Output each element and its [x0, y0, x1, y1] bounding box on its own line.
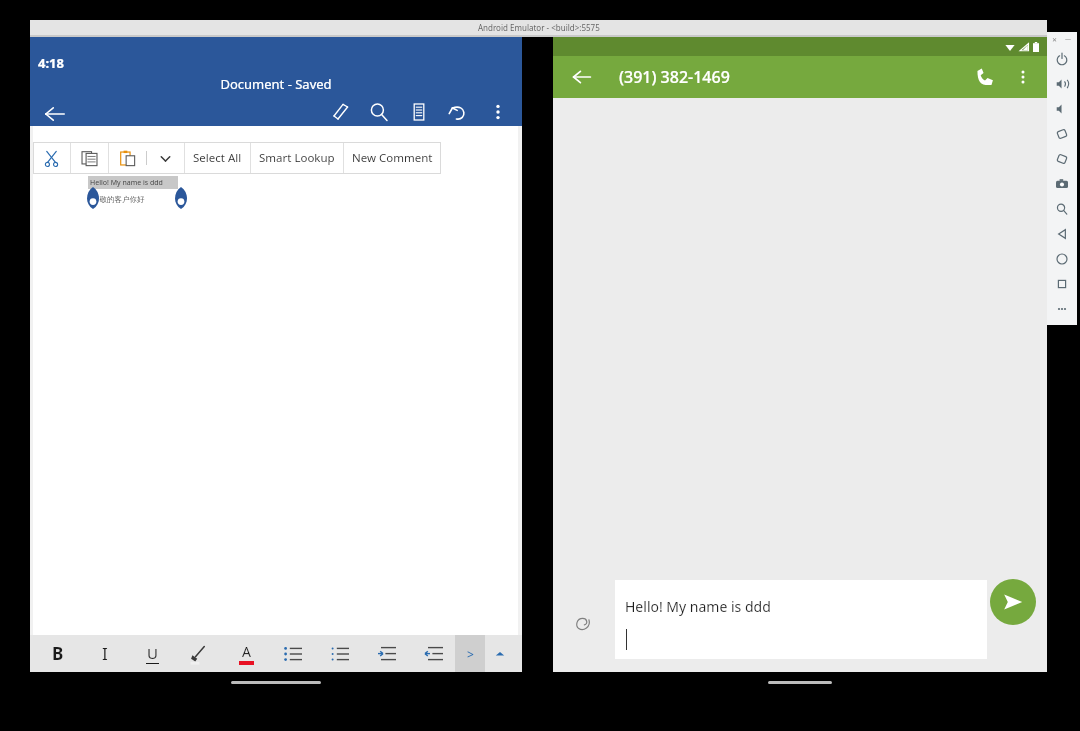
button[interactable]: Volume up [1047, 71, 1077, 96]
staticText: I [102, 642, 108, 665]
button[interactable]: Volume down [1047, 96, 1077, 121]
button[interactable]: More options [1005, 56, 1041, 98]
button[interactable]: Rotate right [1047, 146, 1077, 171]
staticText: > [467, 646, 474, 662]
button[interactable]: Paste [109, 142, 146, 174]
button[interactable]: Font color [226, 635, 266, 672]
button[interactable]: Collapse toolbar [485, 635, 515, 672]
staticText: B [52, 642, 64, 665]
button[interactable]: Read view [402, 95, 436, 129]
button[interactable]: Decrease indent [414, 635, 454, 672]
button[interactable]: More [1047, 296, 1077, 321]
staticText: Hello! My name is ddd [625, 597, 771, 616]
staticText: A [242, 642, 251, 661]
button[interactable]: Rotate left [1047, 121, 1077, 146]
staticText: Select All [193, 150, 242, 166]
button[interactable]: Back [561, 56, 603, 98]
staticText: (391) 382-1469 [619, 66, 730, 88]
button[interactable]: Hello! My name is ddd [615, 580, 987, 659]
button[interactable]: Home [1047, 246, 1077, 271]
button[interactable]: Call [965, 56, 1005, 98]
button[interactable]: More formatting [455, 635, 485, 672]
button[interactable]: Back [36, 95, 74, 133]
staticText: 尊敬的客户你好 [92, 195, 145, 204]
staticText: ✕ [1052, 36, 1058, 43]
button[interactable]: Screenshot [1047, 171, 1077, 196]
button[interactable]: Back [1047, 221, 1077, 246]
staticText: Document - Saved [30, 75, 522, 93]
button[interactable]: Overview [1047, 271, 1077, 296]
button[interactable]: Select All [185, 142, 250, 174]
button[interactable]: Search [362, 95, 396, 129]
button[interactable]: Send [990, 579, 1036, 625]
button[interactable]: Increase indent [367, 635, 407, 672]
button[interactable]: Underline [132, 635, 172, 672]
staticText: Smart Lookup [259, 150, 335, 166]
staticText: U [147, 643, 158, 663]
button[interactable]: Numbering [320, 635, 360, 672]
button[interactable]: Italic [85, 635, 125, 672]
button[interactable]: Copy [71, 142, 108, 174]
staticText: — [1065, 35, 1072, 43]
button[interactable]: Smart Lookup [251, 142, 343, 174]
button[interactable]: Attach [568, 608, 598, 638]
button[interactable]: More options [481, 95, 515, 129]
button[interactable]: Bold [38, 635, 78, 672]
button[interactable]: Ink [325, 95, 359, 129]
staticText: 4:18 [38, 54, 64, 72]
button[interactable]: Highlight [179, 635, 219, 672]
staticText: New Comment [352, 150, 433, 166]
button[interactable]: New Comment [344, 142, 441, 174]
button[interactable]: More [147, 142, 184, 174]
button[interactable]: Undo [441, 95, 475, 129]
button[interactable]: Cut [33, 142, 70, 174]
staticText: Hello! My name is ddd [90, 178, 163, 188]
staticText: Android Emulator - <build>:5575 [478, 22, 600, 33]
button[interactable]: Power [1047, 46, 1077, 71]
button[interactable]: Zoom [1047, 196, 1077, 221]
button[interactable]: Bullets [273, 635, 313, 672]
